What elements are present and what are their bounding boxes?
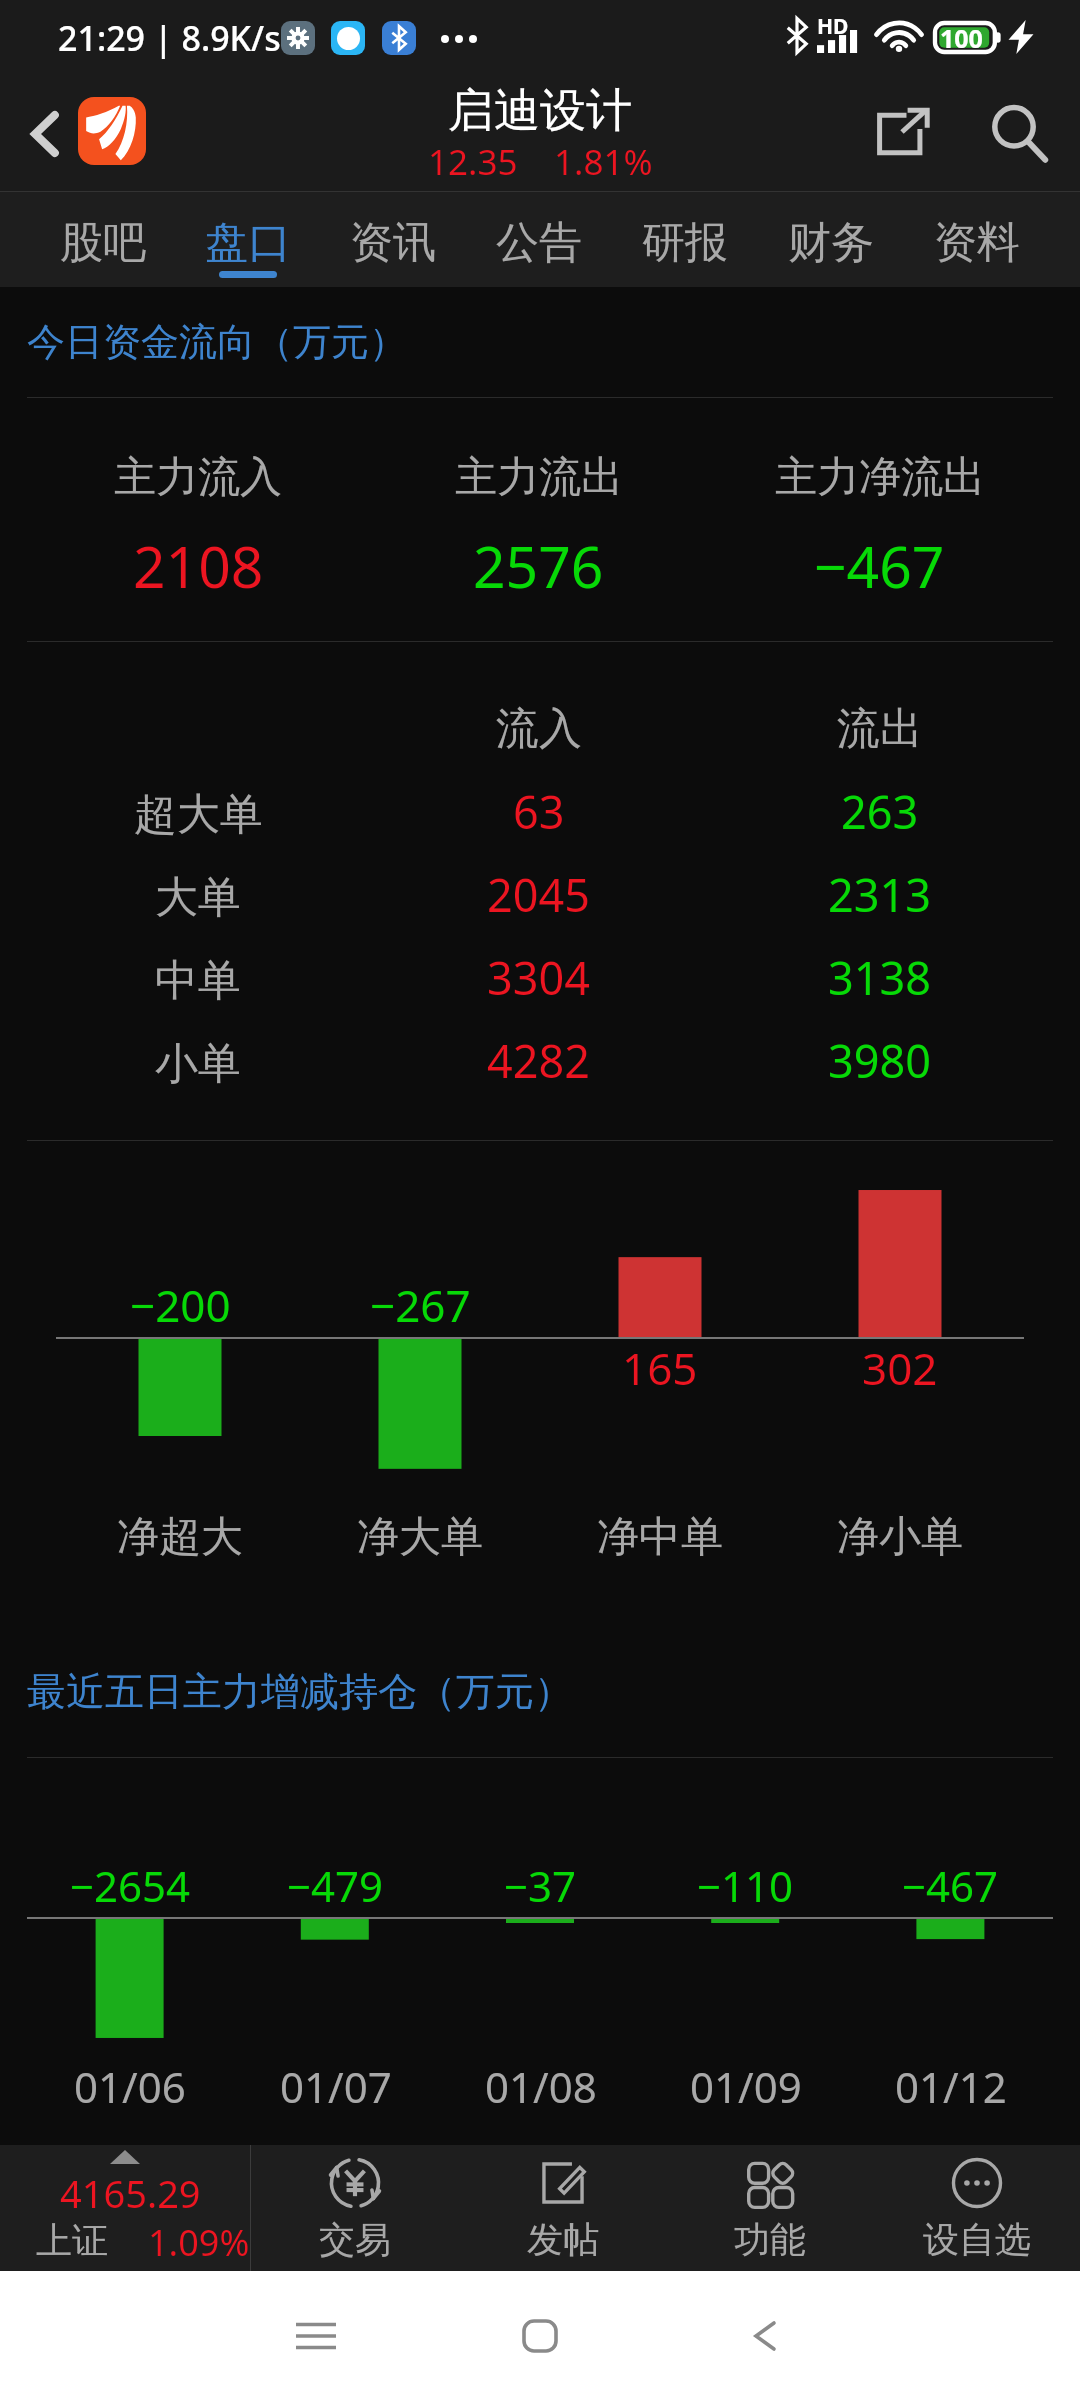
staticText: 12.35: [428, 138, 518, 186]
staticText: 1.09%: [148, 2218, 250, 2267]
staticText: 01/06: [74, 2058, 186, 2115]
staticText: 最近五日主力增减持仓（万元）: [27, 1667, 573, 1716]
staticText: 302: [862, 1338, 938, 1398]
staticText: 盘口: [205, 216, 291, 270]
staticText: 净中单: [597, 1511, 723, 1564]
button[interactable]: 研报: [612, 192, 758, 287]
staticText: 4165.29: [60, 2167, 201, 2219]
staticText: 1.81%: [554, 138, 653, 186]
staticText: 2313: [828, 864, 931, 914]
button[interactable]: 股吧: [30, 192, 175, 287]
button[interactable]: 设自选: [873, 2145, 1080, 2271]
staticText: 2108: [133, 527, 264, 605]
staticText: 01/07: [280, 2058, 392, 2115]
staticText: 今日资金流向（万元）: [27, 318, 407, 366]
button[interactable]: 功能: [666, 2145, 873, 2271]
button[interactable]: Share: [846, 80, 956, 192]
button[interactable]: 4165.29: [0, 2145, 250, 2271]
staticText: 3304: [487, 947, 590, 997]
staticText: 主力流入: [114, 451, 282, 504]
button[interactable]: East Money: [78, 97, 146, 165]
staticText: 3980: [828, 1030, 931, 1080]
staticText: 小单: [155, 1037, 241, 1087]
staticText: 大单: [155, 871, 241, 921]
button[interactable]: Search: [962, 80, 1074, 192]
staticText: 21:29 | 8.9K/s: [58, 15, 281, 61]
staticText: 4282: [487, 1030, 590, 1080]
staticText: −467: [814, 527, 945, 605]
staticText: 63: [513, 781, 565, 831]
staticText: 研报: [642, 216, 728, 270]
staticText: 财务: [788, 216, 874, 270]
staticText: 2576: [473, 527, 604, 605]
staticText: 设自选: [923, 2217, 1031, 2262]
staticText: −200: [130, 1275, 231, 1335]
staticText: HD: [817, 12, 849, 41]
staticText: 165: [622, 1338, 698, 1398]
staticText: 主力流出: [455, 451, 623, 504]
staticText: 净小单: [837, 1511, 963, 1564]
staticText: −267: [370, 1275, 471, 1335]
staticText: 中单: [155, 954, 241, 1004]
staticText: −110: [697, 1857, 794, 1914]
button[interactable]: 发帖: [459, 2145, 666, 2271]
staticText: 上证: [36, 2218, 108, 2263]
button[interactable]: Back: [705, 2271, 825, 2400]
staticText: 流入: [496, 702, 582, 752]
staticText: −37: [504, 1857, 577, 1914]
staticText: 净大单: [357, 1511, 483, 1564]
button[interactable]: Home: [480, 2271, 600, 2400]
staticText: 主力净流出: [775, 451, 985, 504]
button[interactable]: 资料: [904, 192, 1050, 287]
button[interactable]: 盘口: [175, 192, 320, 287]
button[interactable]: 交易: [251, 2145, 459, 2271]
button[interactable]: 公告: [466, 192, 612, 287]
staticText: 资讯: [350, 216, 436, 270]
staticText: 公告: [496, 216, 582, 270]
staticText: 2045: [487, 864, 590, 914]
staticText: 100: [940, 21, 983, 52]
button[interactable]: 财务: [758, 192, 904, 287]
staticText: 净超大: [117, 1511, 243, 1564]
staticText: 01/12: [895, 2058, 1007, 2115]
staticText: 发帖: [527, 2217, 599, 2262]
staticText: 01/08: [485, 2058, 597, 2115]
staticText: 01/09: [690, 2058, 802, 2115]
staticText: −2654: [70, 1857, 191, 1914]
staticText: −467: [902, 1857, 999, 1914]
staticText: 3138: [828, 947, 931, 997]
staticText: 股吧: [60, 216, 146, 270]
button[interactable]: Recents: [256, 2271, 376, 2400]
staticText: 流出: [837, 702, 923, 752]
staticText: 启迪设计: [448, 82, 632, 140]
staticText: −479: [287, 1857, 384, 1914]
button[interactable]: 资讯: [320, 192, 466, 287]
staticText: 超大单: [134, 788, 263, 838]
staticText: 资料: [934, 216, 1020, 270]
staticText: 功能: [734, 2217, 806, 2262]
staticText: 交易: [319, 2217, 391, 2262]
staticText: 263: [841, 781, 919, 831]
button[interactable]: Back: [14, 80, 76, 192]
